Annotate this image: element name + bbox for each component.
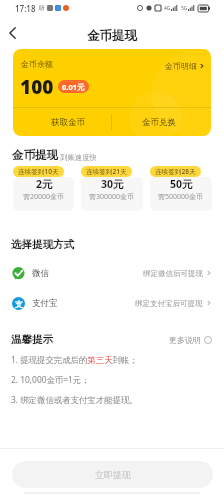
staticText: 到账速度快 — [60, 153, 97, 162]
button[interactable]: 连续签到21天 — [81, 166, 143, 211]
staticText: 4G — [164, 5, 171, 12]
staticText: 支付宝 — [32, 298, 58, 309]
button[interactable]: 更多说明 — [169, 335, 212, 345]
staticText: 17:18 — [15, 3, 36, 14]
button[interactable]: 金币明细 — [163, 59, 207, 73]
staticText: 2. 10,000金币=1元； — [11, 374, 90, 385]
button[interactable]: 连续签到10天 — [13, 166, 74, 211]
staticText: 金币提现 — [87, 28, 137, 44]
staticText: 5G — [181, 5, 188, 12]
staticText: 绑定微信后可提现 — [143, 269, 203, 278]
button[interactable]: 获取金币 — [13, 108, 111, 136]
staticText: 1. 提现提交完成后的第三天到账； — [11, 354, 138, 365]
button[interactable]: 微信 — [12, 265, 212, 281]
staticText: 温馨提示 — [11, 333, 53, 346]
staticText: 立即提现 — [95, 469, 131, 480]
staticText: 微信 — [32, 268, 49, 279]
staticText: 100 — [20, 74, 54, 100]
staticText: 金币兑换 — [142, 117, 176, 128]
staticText: 50元 — [170, 177, 193, 191]
staticText: 2元 — [36, 177, 53, 191]
staticText: 连续签到21天 — [86, 167, 127, 176]
staticText: 金币明细 — [165, 61, 197, 71]
staticText: 连续签到28天 — [155, 167, 196, 176]
button[interactable]: 金币兑换 — [112, 108, 211, 136]
staticText: 更多说明 — [169, 335, 201, 345]
staticText: 0.01元 — [62, 82, 85, 92]
staticText: 需300000金币 — [89, 192, 135, 202]
staticText: 需20000金币 — [23, 192, 65, 202]
button[interactable]: Back — [0, 20, 25, 46]
staticText: 3. 绑定微信或者支付宝才能提现。 — [11, 394, 138, 405]
staticText: 连续签到10天 — [18, 167, 59, 176]
staticText: 需500000金币 — [158, 192, 204, 202]
staticText: 支 — [15, 299, 23, 309]
button[interactable]: 连续签到28天 — [150, 166, 212, 211]
staticText: 获取金币 — [51, 117, 85, 128]
button[interactable]: 立即提现 — [12, 461, 213, 488]
staticText: 金币余额 — [21, 59, 53, 69]
staticText: 听 — [39, 4, 45, 12]
staticText: 30元 — [101, 177, 124, 191]
staticText: 绑定支付宝后可提现 — [135, 299, 203, 308]
staticText: 金币提现 — [12, 148, 58, 162]
button[interactable]: 支 — [12, 295, 212, 311]
staticText: 选择提现方式 — [11, 238, 74, 251]
